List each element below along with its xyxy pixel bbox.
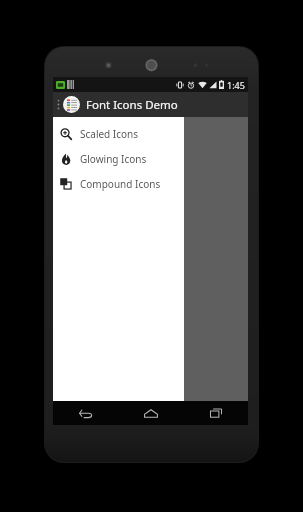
button[interactable]: Back [53, 401, 118, 425]
button[interactable]: Recent apps [183, 401, 248, 425]
staticText: Scaled Icons [80, 127, 139, 141]
staticText: Compound Icons [80, 177, 161, 191]
button[interactable]: Compound Icons [53, 171, 184, 196]
button[interactable]: Open navigation drawer [53, 92, 63, 117]
staticText: Glowing Icons [80, 152, 147, 166]
button[interactable]: Home [118, 401, 183, 425]
staticText: 1:45 [227, 79, 245, 91]
button[interactable]: Glowing Icons [53, 146, 184, 171]
staticText: Font Icons Demo [86, 97, 178, 113]
button[interactable]: Scaled Icons [53, 121, 184, 146]
